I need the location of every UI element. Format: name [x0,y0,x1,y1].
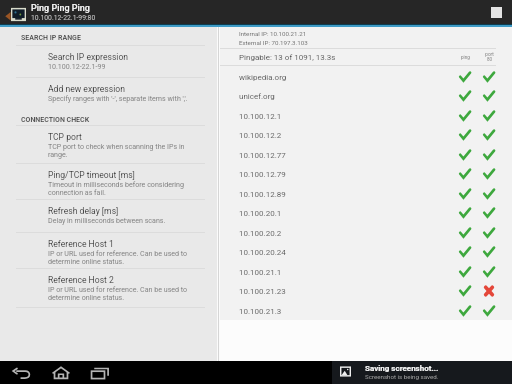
staticText: wikipedia.org [239,73,287,82]
staticText: 10.100.12.1 [239,112,282,121]
staticText: 10.100.12.2 [239,131,282,140]
staticText: 10.100.20.1 [239,209,282,218]
staticText: TCP port [48,132,82,142]
staticText: Reference Host 2 [48,275,114,285]
staticText: IP or URL used for reference. Can be use… [48,285,188,293]
button[interactable]: 10.100.21.3 [220,301,512,321]
button[interactable]: TCP port [0,126,217,164]
staticText: CONNECTION CHECK [21,116,90,124]
staticText: port 80 [485,52,494,62]
staticText: Screenshot is being saved. [365,373,439,380]
staticText: connection as fail. [48,188,106,196]
staticText: range. [48,150,68,158]
staticText: Delay in milliseconds between scans. [48,216,166,224]
button[interactable]: Back [10,361,34,384]
button[interactable]: 10.100.12.77 [220,145,512,165]
staticText: Timeout in milliseconds before consideri… [48,180,184,188]
button[interactable]: 10.100.21.1 [220,262,512,282]
button[interactable]: 10.100.20.2 [220,223,512,243]
button[interactable]: Stop scan [486,2,506,22]
staticText: 10.100.12.79 [239,170,286,179]
staticText: Internal IP: 10.100.21.21 [239,30,307,37]
staticText: 10.100.20.24 [239,248,286,257]
button[interactable]: 10.100.21.23 [220,281,512,301]
other: Navigate up [4,11,11,21]
staticText: 10.100.21.3 [239,307,282,316]
button[interactable]: wikipedia.org [220,67,512,87]
button[interactable]: Refresh delay [ms] [0,200,217,233]
staticText: Refresh delay [ms] [48,206,119,216]
button[interactable]: Add new expression [0,78,217,109]
staticText: determine online status. [48,293,125,301]
staticText: Add new expression [48,84,125,94]
button[interactable]: 10.100.12.89 [220,184,512,204]
button[interactable]: Saving screenshot... [332,361,512,384]
button[interactable]: unicef.org [220,86,512,106]
staticText: Search IP expression [48,52,129,62]
button[interactable]: Search IP expression [0,46,217,78]
staticText: 10.100.20.2 [239,229,282,238]
button[interactable]: 10.100.12.79 [220,164,512,184]
button[interactable]: 10.100.20.1 [220,203,512,223]
staticText: Ping Ping Ping [31,3,90,14]
staticText: Specify ranges with '-', separate items … [48,94,188,102]
staticText: 10.100.12.77 [239,151,286,160]
staticText: 10.100.21.23 [239,287,286,296]
button[interactable]: 10.100.12.2 [220,125,512,145]
staticText: Ping/TCP timeout [ms] [48,170,135,180]
button[interactable]: Recent apps [88,361,112,384]
button[interactable]: Reference Host 2 [0,269,217,308]
staticText: unicef.org [239,92,275,101]
staticText: 10.100.12-22.1-99 [48,62,106,70]
button[interactable]: 10.100.12.1 [220,106,512,126]
staticText: 10.100.12.89 [239,190,286,199]
staticText: ping [461,55,470,60]
staticText: SEARCH IP RANGE [21,34,81,42]
staticText: IP or URL used for reference. Can be use… [48,249,188,257]
button[interactable]: Ping/TCP timeout [ms] [0,164,217,200]
button[interactable]: Home [49,361,73,384]
staticText: External IP: 70.197.3.103 [239,39,308,46]
staticText: TCP port to check when scanning the IPs … [48,142,185,150]
staticText: determine online status. [48,257,125,265]
staticText: Reference Host 1 [48,239,114,249]
staticText: 10.100.21.1 [239,268,282,277]
staticText: Pingable: 13 of 1091, 13.3s [239,53,336,62]
button[interactable]: 10.100.20.24 [220,242,512,262]
button[interactable]: Reference Host 1 [0,233,217,269]
staticText: Saving screenshot... [365,364,439,373]
staticText: 10.100.12-22.1-99:80 [31,14,96,22]
